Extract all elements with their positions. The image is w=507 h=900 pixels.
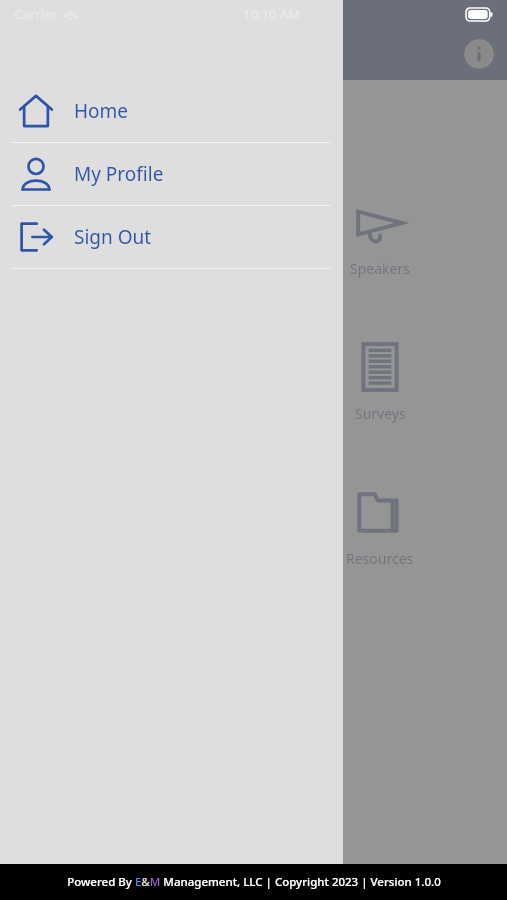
staticText: 10:10 AM [243, 5, 301, 23]
button[interactable]: Resources [342, 482, 418, 572]
staticText: Surveys [355, 404, 406, 423]
button[interactable]: Sign Out [0, 206, 343, 268]
button[interactable]: Information [464, 39, 494, 69]
staticText: Resources [346, 549, 414, 568]
button[interactable]: Surveys [350, 337, 410, 427]
staticText: Speakers [350, 259, 410, 278]
staticText: Carrier [14, 5, 58, 23]
button[interactable]: Speakers [346, 192, 414, 282]
staticText: Attendees [93, 259, 160, 278]
staticText: My Profile [74, 161, 164, 187]
button[interactable]: Home [0, 80, 343, 142]
button[interactable]: My Profile [0, 143, 343, 205]
button[interactable]: Attendees [89, 192, 164, 282]
staticText: Powered By E&M Management, LLC | Copyrig… [67, 874, 441, 890]
staticText: Sign Out [74, 224, 152, 250]
staticText: Home [74, 98, 129, 124]
